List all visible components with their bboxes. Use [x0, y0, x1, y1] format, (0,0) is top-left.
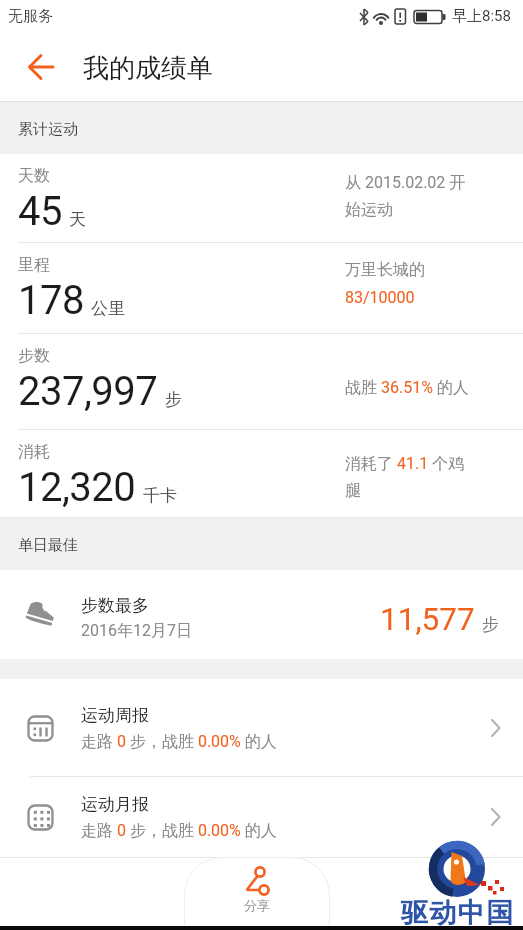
- staticText: 公里: [91, 298, 125, 319]
- button[interactable]: 步数最多: [0, 570, 523, 659]
- staticText: 里程: [18, 255, 50, 275]
- staticText: 步: [482, 614, 499, 635]
- button[interactable]: 天数: [0, 154, 523, 243]
- button[interactable]: [28, 54, 54, 80]
- staticText: 11,577: [380, 601, 475, 638]
- button[interactable]: 运动月报: [0, 777, 523, 857]
- staticText: 早上8:58: [452, 7, 511, 26]
- button[interactable]: 分享: [184, 857, 330, 930]
- button[interactable]: 运动周报: [0, 679, 523, 777]
- staticText: 我的成绩单: [83, 52, 213, 85]
- staticText: 12,320: [18, 464, 136, 511]
- staticText: 累计运动: [18, 120, 78, 139]
- staticText: 237,997: [18, 368, 158, 415]
- staticText: 天: [69, 209, 86, 230]
- staticText: 步数最多: [81, 595, 149, 616]
- staticText: 单日最佳: [18, 536, 78, 555]
- staticText: 从 2015.02.02 开 始运动: [345, 173, 466, 220]
- staticText: 天数: [18, 166, 50, 186]
- staticText: 千卡: [143, 485, 177, 506]
- staticText: 45: [18, 188, 62, 235]
- button[interactable]: 步数: [0, 334, 523, 430]
- staticText: 运动月报: [81, 794, 149, 815]
- staticText: 178: [18, 277, 84, 324]
- staticText: 驱动中国: [400, 896, 514, 930]
- staticText: 步: [165, 389, 182, 410]
- button[interactable]: 消耗: [0, 430, 523, 518]
- staticText: 无服务: [8, 7, 53, 26]
- staticText: 分享: [244, 897, 270, 913]
- staticText: 走路 0 步，战胜 0.00% 的人: [81, 821, 277, 841]
- staticText: 运动周报: [81, 705, 149, 726]
- staticText: 2016年12月7日: [81, 621, 192, 641]
- button[interactable]: 里程: [0, 243, 523, 334]
- staticText: 万里长城的 83/10000: [345, 260, 425, 307]
- staticText: 战胜 36.51% 的人: [345, 378, 469, 398]
- staticText: 消耗了 41.1 个鸡 腿: [345, 454, 465, 501]
- staticText: 消耗: [18, 442, 50, 462]
- staticText: 走路 0 步，战胜 0.00% 的人: [81, 732, 277, 752]
- staticText: 步数: [18, 346, 50, 366]
